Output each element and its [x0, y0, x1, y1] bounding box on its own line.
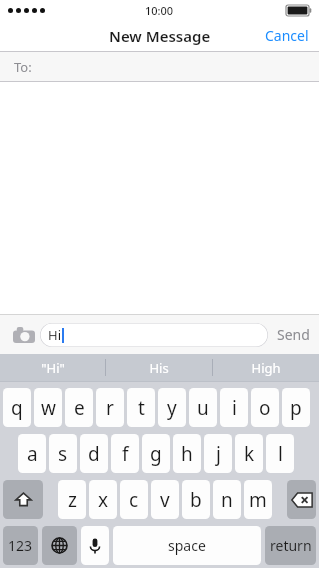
- button[interactable]: q: [3, 388, 31, 427]
- staticText: u: [197, 395, 209, 421]
- button[interactable]: High: [213, 354, 319, 381]
- staticText: To:: [14, 58, 32, 76]
- button[interactable]: a: [18, 434, 46, 473]
- staticText: i: [232, 395, 237, 421]
- staticText: 10:00: [145, 3, 174, 18]
- button[interactable]: o: [251, 388, 279, 427]
- staticText: "Hi": [41, 359, 65, 377]
- staticText: y: [167, 395, 177, 421]
- staticText: His: [149, 359, 169, 377]
- button[interactable]: t: [127, 388, 155, 427]
- staticText: w: [41, 395, 56, 421]
- button[interactable]: d: [80, 434, 108, 473]
- button[interactable]: Dictate: [81, 526, 109, 565]
- staticText: space: [168, 536, 206, 555]
- button[interactable]: y: [158, 388, 186, 427]
- button[interactable]: His: [106, 354, 212, 381]
- button[interactable]: v: [151, 480, 179, 519]
- staticText: z: [68, 487, 77, 513]
- button[interactable]: z: [58, 480, 86, 519]
- staticText: b: [190, 487, 202, 513]
- staticText: d: [88, 441, 100, 467]
- button[interactable]: m: [244, 480, 272, 519]
- button[interactable]: s: [49, 434, 77, 473]
- staticText: Hi: [48, 326, 61, 344]
- staticText: Cancel: [265, 26, 309, 45]
- button[interactable]: i: [220, 388, 248, 427]
- button[interactable]: b: [182, 480, 210, 519]
- button[interactable]: Backspace: [287, 480, 316, 519]
- staticText: c: [129, 487, 139, 513]
- staticText: Send: [277, 325, 310, 344]
- staticText: l: [278, 441, 283, 467]
- button[interactable]: j: [204, 434, 232, 473]
- button[interactable]: Cancel: [255, 22, 319, 49]
- staticText: n: [221, 487, 233, 513]
- button[interactable]: Camera: [8, 319, 40, 351]
- button[interactable]: x: [89, 480, 117, 519]
- button[interactable]: To:: [0, 52, 319, 81]
- staticText: e: [74, 395, 85, 421]
- staticText: x: [98, 487, 109, 513]
- staticText: High: [251, 359, 281, 377]
- staticText: k: [244, 441, 255, 467]
- staticText: o: [259, 395, 271, 421]
- button[interactable]: g: [142, 434, 170, 473]
- button[interactable]: Send: [268, 319, 319, 350]
- button[interactable]: c: [120, 480, 148, 519]
- button[interactable]: 123: [3, 526, 38, 565]
- button[interactable]: f: [111, 434, 139, 473]
- button[interactable]: p: [282, 388, 310, 427]
- staticText: v: [160, 487, 170, 513]
- button[interactable]: space: [113, 526, 261, 565]
- staticText: New Message: [109, 26, 211, 46]
- staticText: f: [122, 441, 129, 467]
- button[interactable]: Globe: [42, 526, 77, 565]
- staticText: p: [290, 395, 302, 421]
- button[interactable]: Hi: [40, 323, 268, 347]
- button[interactable]: Shift: [3, 480, 43, 519]
- staticText: j: [216, 441, 221, 467]
- staticText: g: [150, 441, 162, 467]
- button[interactable]: e: [65, 388, 93, 427]
- staticText: h: [181, 441, 193, 467]
- button[interactable]: l: [266, 434, 294, 473]
- button[interactable]: r: [96, 388, 124, 427]
- staticText: t: [138, 395, 145, 421]
- button[interactable]: n: [213, 480, 241, 519]
- button[interactable]: "Hi": [0, 354, 105, 381]
- staticText: s: [58, 441, 68, 467]
- staticText: a: [27, 441, 38, 467]
- staticText: r: [106, 395, 114, 421]
- staticText: m: [249, 487, 267, 513]
- staticText: return: [270, 536, 312, 555]
- button[interactable]: return: [265, 526, 316, 565]
- button[interactable]: k: [235, 434, 263, 473]
- staticText: 123: [8, 536, 33, 555]
- button[interactable]: h: [173, 434, 201, 473]
- button[interactable]: w: [34, 388, 62, 427]
- button[interactable]: u: [189, 388, 217, 427]
- staticText: q: [11, 395, 23, 421]
